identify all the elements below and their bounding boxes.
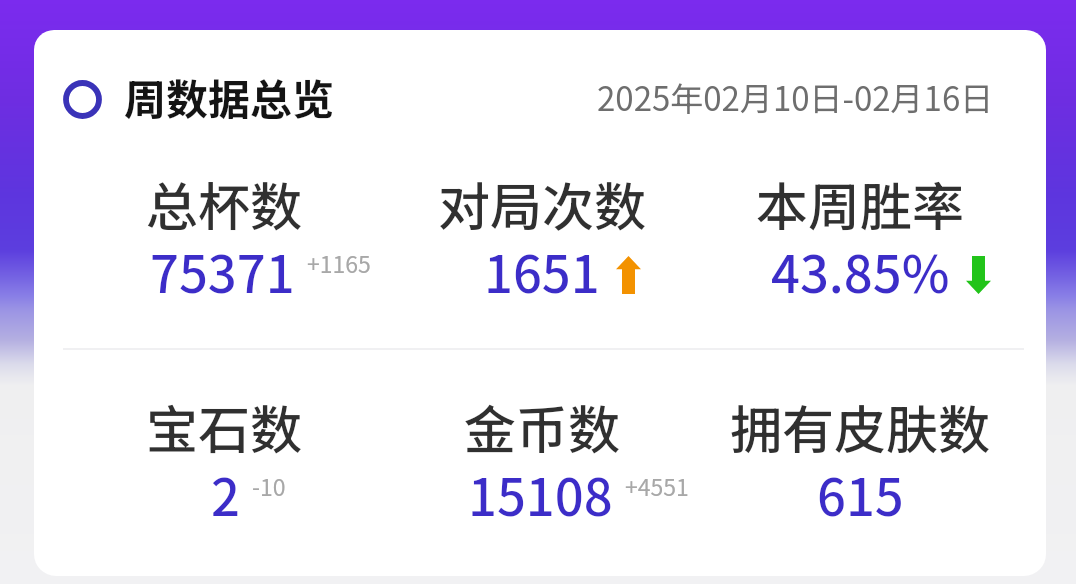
button[interactable]: 本周胜率 — [701, 166, 1019, 315]
staticText: 75371 — [150, 234, 295, 308]
button[interactable]: 金币数 — [383, 389, 701, 538]
staticText: 金币数 — [464, 389, 621, 464]
staticText: +4551 — [625, 469, 689, 502]
button[interactable]: 对局次数 — [383, 166, 701, 315]
staticText: 宝石数 — [146, 389, 303, 464]
staticText: 对局次数 — [438, 166, 647, 241]
staticText: +1165 — [307, 246, 371, 279]
staticText: 615 — [817, 457, 904, 531]
staticText: 总杯数 — [146, 166, 303, 241]
staticText: -10 — [252, 469, 286, 502]
staticText: 43.85% — [771, 234, 950, 308]
staticText: 本周胜率 — [756, 166, 965, 241]
staticText: 1651 — [484, 234, 600, 308]
button[interactable]: Weekly data overview — [60, 75, 104, 119]
staticText: 15108 — [468, 457, 613, 531]
other: Trending up — [616, 256, 641, 294]
button[interactable]: 总杯数 — [65, 166, 383, 315]
other: Trending down — [966, 256, 991, 294]
staticText: 拥有皮肤数 — [730, 389, 991, 464]
staticText: 周数据总览 — [124, 66, 335, 127]
staticText: 2025年02月10日-02月16日 — [597, 73, 994, 121]
button[interactable]: 宝石数 — [65, 389, 383, 538]
button[interactable]: 拥有皮肤数 — [701, 389, 1019, 538]
staticText: 2 — [211, 457, 240, 531]
